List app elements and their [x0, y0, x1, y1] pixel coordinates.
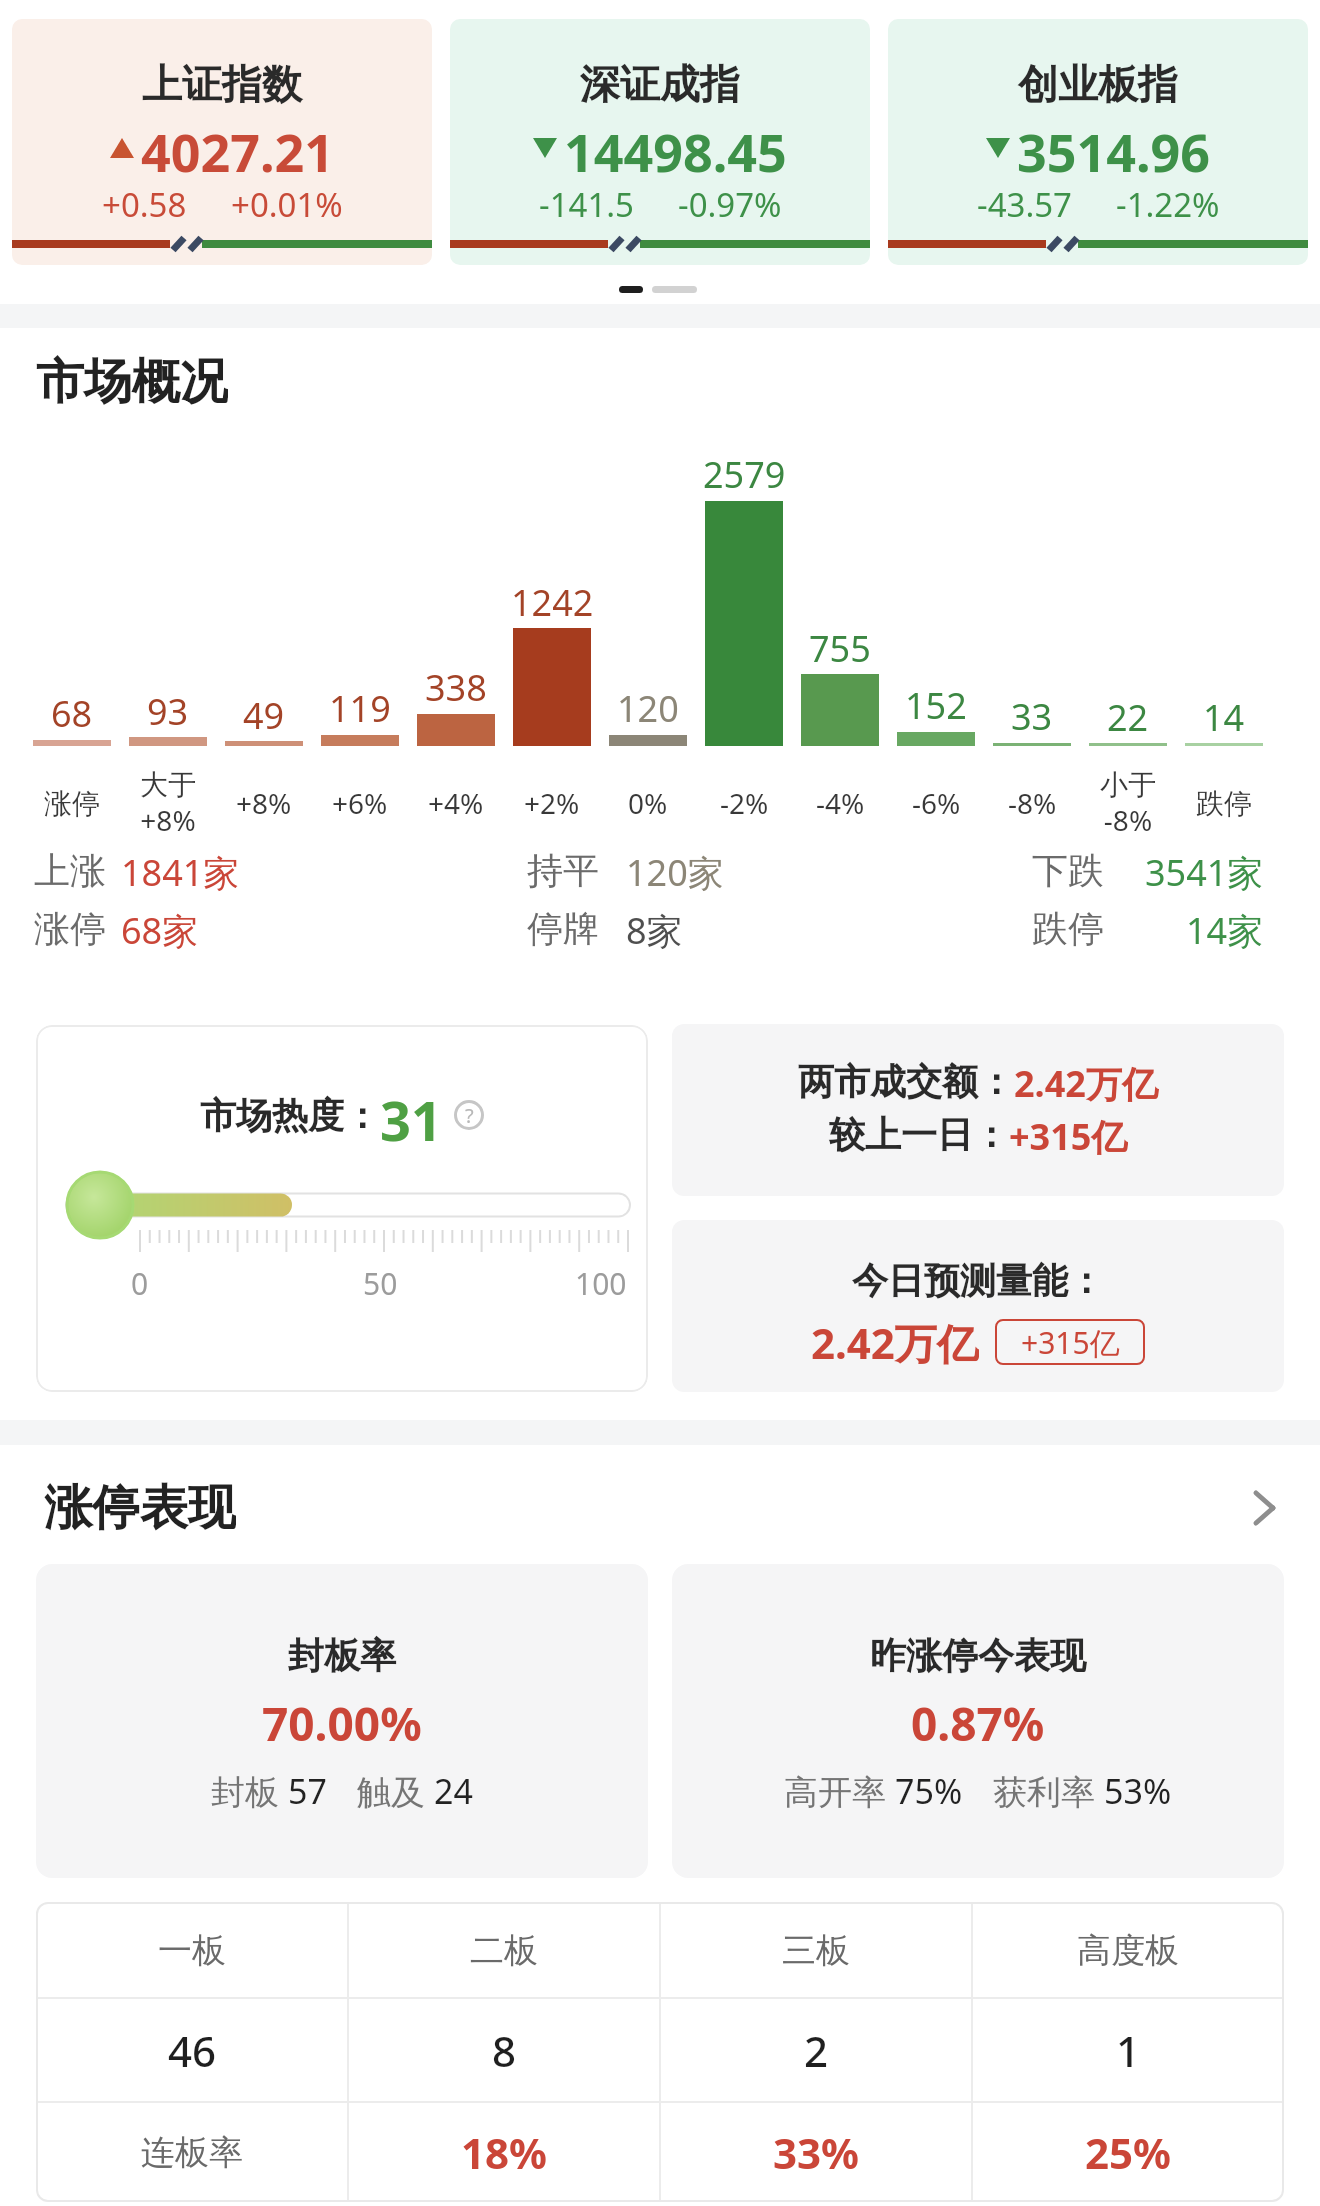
button[interactable]: 创业板指	[888, 19, 1308, 265]
staticText: 46	[168, 2022, 217, 2078]
staticText: 一板	[158, 1929, 226, 1972]
staticText: 18%	[461, 2124, 547, 2180]
button[interactable]: 两市成交额：	[672, 1024, 1284, 1196]
staticText: +4%	[428, 784, 484, 822]
staticText: 获利率	[993, 1768, 1104, 1814]
button[interactable]: 一板	[36, 1902, 1284, 2202]
button[interactable]: 深证成指	[450, 19, 870, 265]
staticText: -8%	[1008, 784, 1057, 822]
staticText: 连板率	[141, 2131, 243, 2174]
button[interactable]	[1250, 1489, 1278, 1527]
staticText: 跌停	[1196, 786, 1252, 821]
staticText: 2	[804, 2022, 829, 2078]
staticText: 1242	[511, 578, 594, 622]
staticText: 8	[492, 2022, 517, 2078]
staticText: 8家	[626, 906, 683, 950]
staticText: 二板	[470, 1929, 538, 1972]
staticText: -2%	[720, 784, 769, 822]
staticText: 较上一日：	[829, 1112, 1009, 1157]
button[interactable]: 昨涨停今表现	[672, 1564, 1284, 1878]
staticText: -141.5	[539, 182, 634, 226]
staticText: -43.57	[977, 182, 1072, 226]
staticText: 338	[425, 663, 487, 707]
staticText: 涨停	[34, 906, 106, 950]
staticText: 33%	[773, 2124, 859, 2180]
staticText: 上涨	[34, 848, 106, 892]
staticText: 25%	[1085, 2124, 1171, 2180]
staticText: 3514.96	[1017, 116, 1211, 180]
staticText: +315亿	[1021, 1322, 1120, 1363]
staticText: -0.97%	[678, 182, 782, 226]
staticText: 涨停表现	[44, 1478, 236, 1534]
staticText: +0.58	[102, 182, 187, 226]
staticText: 涨停	[44, 786, 100, 821]
staticText: 152	[905, 681, 967, 725]
staticText: 跌停	[1032, 906, 1104, 950]
staticText: ?	[465, 1102, 474, 1129]
button[interactable]: 涨停表现	[44, 1478, 236, 1534]
staticText: 小于 -8%	[1100, 767, 1156, 839]
staticText: 49	[243, 691, 285, 735]
staticText: 触及	[357, 1768, 434, 1814]
staticText: 14498.45	[564, 116, 787, 180]
staticText: 2.42万亿	[1014, 1059, 1158, 1108]
staticText: 68	[51, 689, 93, 733]
staticText: +2%	[524, 784, 580, 822]
staticText: 31	[380, 1083, 442, 1147]
staticText: 持平	[527, 848, 599, 892]
staticText: 22	[1107, 693, 1149, 737]
staticText: 上证指数	[142, 59, 302, 109]
staticText: +6%	[332, 784, 388, 822]
staticText: 三板	[782, 1929, 850, 1972]
staticText: -1.22%	[1116, 182, 1220, 226]
staticText: 大于 +8%	[140, 767, 196, 839]
staticText: 市场概况	[36, 352, 228, 408]
staticText: 今日预测量能：	[852, 1258, 1104, 1303]
staticText: -6%	[912, 784, 961, 822]
staticText: 14家	[1186, 906, 1264, 950]
staticText: 昨涨停今表现	[870, 1633, 1086, 1678]
staticText: 3541家	[1145, 848, 1264, 892]
staticText: 0.87%	[911, 1692, 1045, 1752]
staticText: 高度板	[1077, 1929, 1179, 1972]
staticText: 深证成指	[580, 59, 740, 109]
staticText: 120	[617, 684, 679, 728]
staticText: 封板率	[288, 1633, 396, 1678]
staticText: 14	[1203, 693, 1245, 737]
staticText: -4%	[816, 784, 865, 822]
staticText: 2.42万亿	[811, 1314, 979, 1370]
button[interactable]: 上证指数	[12, 19, 432, 265]
staticText: 119	[329, 684, 391, 728]
staticText: 755	[809, 624, 871, 668]
staticText: 1841家	[121, 848, 240, 892]
staticText: 两市成交额：	[798, 1059, 1014, 1104]
staticText: 封板	[211, 1768, 288, 1814]
button[interactable]: 今日预测量能：	[672, 1220, 1284, 1392]
staticText: 0%	[628, 784, 668, 822]
staticText: 下跌	[1032, 848, 1104, 892]
button[interactable]: 市场热度：	[36, 1025, 648, 1392]
staticText: 75%	[895, 1768, 963, 1814]
staticText: 57	[288, 1768, 327, 1814]
staticText: 68家	[121, 906, 199, 950]
staticText: 0	[131, 1263, 149, 1304]
staticText: 70.00%	[262, 1692, 422, 1752]
staticText: 1	[1116, 2022, 1141, 2078]
staticText: 93	[147, 687, 189, 731]
staticText: 24	[434, 1768, 473, 1814]
staticText: 2579	[703, 450, 786, 494]
staticText: 市场热度：	[200, 1093, 380, 1138]
button[interactable]: 封板率	[36, 1564, 648, 1878]
staticText: 100	[575, 1263, 627, 1304]
staticText: +8%	[236, 784, 292, 822]
staticText: 4027.21	[141, 116, 335, 180]
staticText: 停牌	[527, 906, 599, 950]
staticText: 120家	[626, 848, 724, 892]
staticText: 33	[1011, 692, 1053, 736]
staticText: +0.01%	[231, 182, 343, 226]
staticText: 53%	[1104, 1768, 1172, 1814]
staticText: 高开率	[784, 1768, 895, 1814]
staticText: 创业板指	[1018, 59, 1178, 109]
staticText: +315亿	[1009, 1112, 1128, 1160]
staticText: 50	[363, 1263, 398, 1304]
